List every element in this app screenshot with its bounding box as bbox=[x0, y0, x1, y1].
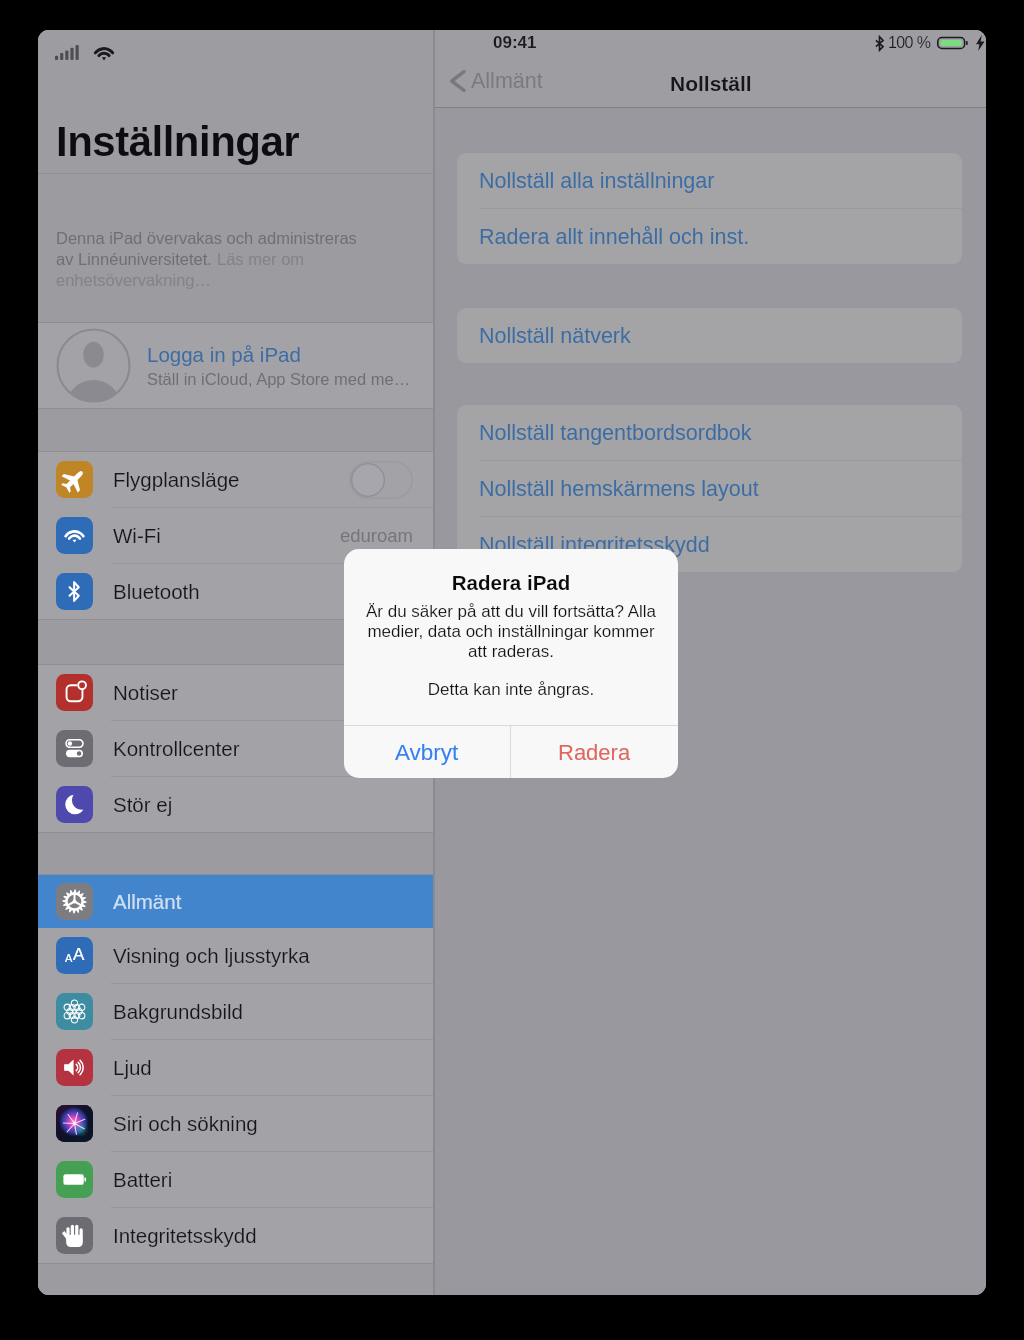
staticText: Allmänt bbox=[113, 890, 182, 913]
staticText: eduroam bbox=[340, 525, 414, 546]
button[interactable]: Logga in på iPad bbox=[38, 323, 433, 408]
staticText: Ställ in iCloud, App Store med me… bbox=[147, 370, 411, 388]
button[interactable]: Avbryt bbox=[344, 726, 510, 778]
staticText: Integritetsskydd bbox=[113, 1224, 257, 1247]
staticText: Nollställ integritetsskydd bbox=[479, 533, 710, 557]
staticText: Nollställ bbox=[670, 72, 752, 95]
button[interactable]: Allmänt bbox=[38, 875, 433, 928]
button[interactable]: Nollställ hemskärmens layout bbox=[457, 461, 962, 516]
staticText: A bbox=[73, 945, 85, 964]
staticText: av Linnéuniversitetet. bbox=[56, 250, 217, 268]
staticText: Kontrollcenter bbox=[113, 737, 240, 760]
button[interactable]: Radera bbox=[511, 726, 678, 778]
button[interactable]: Batteri bbox=[38, 1152, 433, 1207]
staticText: Är du säker på att du vill fortsätta? Al… bbox=[358, 602, 664, 661]
staticText: Inställningar bbox=[56, 118, 300, 165]
button[interactable]: Bluetooth bbox=[38, 564, 433, 619]
staticText: 100 % bbox=[888, 34, 931, 52]
button[interactable]: Siri och sökning bbox=[38, 1096, 433, 1151]
button[interactable]: Flygplansläge bbox=[38, 452, 433, 507]
staticText: Radera allt innehåll och inst. bbox=[479, 225, 750, 249]
button[interactable]: Radera allt innehåll och inst. bbox=[457, 209, 962, 264]
staticText: Visning och ljusstyrka bbox=[113, 944, 310, 967]
button[interactable]: Integritetsskydd bbox=[38, 1208, 433, 1263]
staticText: enhetsövervakning… bbox=[56, 271, 212, 289]
staticText: Stör ej bbox=[113, 793, 173, 816]
staticText: Radera bbox=[558, 740, 631, 765]
staticText: Siri och sökning bbox=[113, 1112, 258, 1135]
staticText: Ljud bbox=[113, 1056, 152, 1079]
staticText: Bakgrundsbild bbox=[113, 1000, 243, 1023]
button[interactable]: Notiser bbox=[38, 665, 433, 720]
button[interactable]: Ljud bbox=[38, 1040, 433, 1095]
button[interactable]: Nollställ tangentbordsordbok bbox=[457, 405, 962, 460]
staticText: Nollställ hemskärmens layout bbox=[479, 477, 759, 501]
staticText: Avbryt bbox=[395, 740, 459, 765]
staticText: Detta kan inte ångras. bbox=[344, 680, 678, 699]
button[interactable]: Allmänt bbox=[449, 68, 543, 94]
staticText: Bluetooth bbox=[113, 580, 200, 603]
staticText: Radera iPad bbox=[344, 571, 678, 594]
staticText: Nollställ nätverk bbox=[479, 324, 631, 348]
button[interactable]: Stör ej bbox=[38, 777, 433, 832]
button[interactable]: Nollställ nätverk bbox=[457, 308, 962, 363]
staticText: Nollställ tangentbordsordbok bbox=[479, 421, 752, 445]
button[interactable]: Nollställ integritetsskydd bbox=[457, 517, 962, 572]
button[interactable]: Bakgrundsbild bbox=[38, 984, 433, 1039]
staticText: Nollställ alla inställningar bbox=[479, 169, 715, 193]
staticText: Allmänt bbox=[471, 69, 543, 93]
staticText: A bbox=[65, 952, 73, 964]
staticText: Notiser bbox=[113, 681, 178, 704]
staticText: Wi-Fi bbox=[113, 524, 161, 547]
staticText: Flygplansläge bbox=[113, 468, 240, 491]
staticText: Batteri bbox=[113, 1168, 173, 1191]
button[interactable]: Nollställ alla inställningar bbox=[457, 153, 962, 208]
staticText: 09:41 bbox=[493, 33, 537, 52]
button[interactable]: Kontrollcenter bbox=[38, 721, 433, 776]
button[interactable]: Wi-Fi bbox=[38, 508, 433, 563]
button[interactable]: A bbox=[38, 928, 433, 983]
button[interactable]: Flygplansläge toggle bbox=[349, 461, 413, 499]
staticText: Denna iPad övervakas och administreras bbox=[56, 229, 357, 247]
staticText: Logga in på iPad bbox=[147, 343, 301, 366]
staticText: Läs mer om bbox=[217, 250, 305, 268]
